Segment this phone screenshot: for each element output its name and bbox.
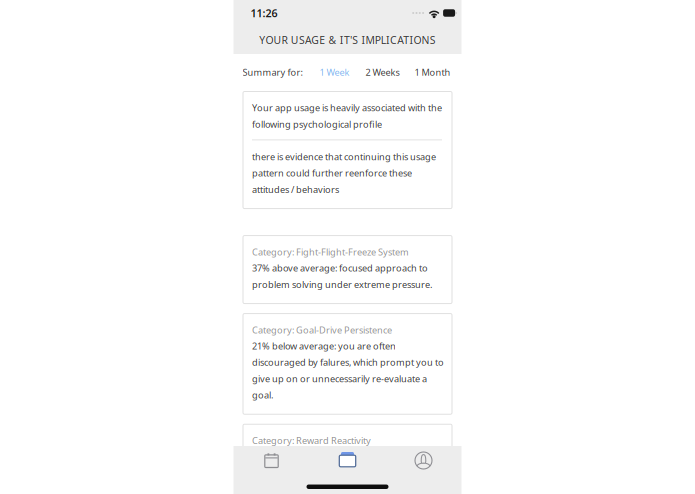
staticText: Category: Reward Reactivity — [252, 434, 371, 447]
staticText: 21% below average: you are often discour… — [252, 340, 444, 401]
staticText: YOUR USAGE & IT'S IMPLICATIONS — [259, 33, 436, 47]
staticText: Summary for: — [242, 66, 302, 78]
button[interactable]: 2 Weeks — [365, 66, 399, 78]
staticText: 2 Weeks — [365, 66, 399, 78]
button[interactable]: Profile — [385, 445, 461, 475]
button[interactable]: Calendar — [233, 445, 309, 475]
button[interactable]: 1 Month — [414, 66, 450, 78]
staticText: 18% above average: you respond strongly … — [252, 450, 444, 479]
staticText: Category: Goal-Drive Persistence — [252, 324, 392, 336]
button[interactable]: 1 Week — [319, 66, 349, 78]
staticText: 1 Week — [319, 66, 349, 78]
staticText: Your app usage is heavily associated wit… — [252, 101, 442, 130]
button[interactable]: Reports — [309, 445, 385, 475]
staticText: 1 Month — [414, 66, 450, 78]
staticText: 37% above average: focused approach to p… — [252, 262, 432, 291]
staticText: there is evidence that continuing this u… — [252, 150, 436, 196]
staticText: 11:26 — [250, 6, 277, 20]
staticText: Category: Fight-Flight-Freeze System — [252, 246, 409, 258]
